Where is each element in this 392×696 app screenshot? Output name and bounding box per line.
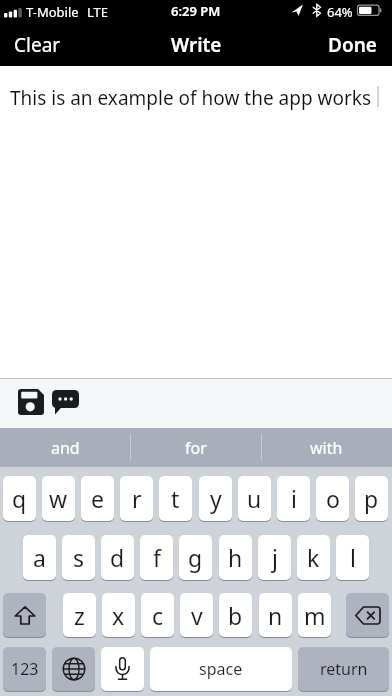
staticText: q <box>12 483 27 514</box>
button[interactable]: return <box>298 647 389 691</box>
staticText: This is an example of how the app works <box>10 85 372 111</box>
button[interactable] <box>101 647 144 691</box>
staticText: u <box>247 483 262 514</box>
button[interactable]: d <box>101 535 134 580</box>
staticText: Done <box>328 32 377 58</box>
staticText: g <box>188 542 203 573</box>
button[interactable]: k <box>297 535 330 580</box>
button[interactable]: z <box>63 593 96 637</box>
staticText: 64% <box>327 3 353 21</box>
button[interactable]: c <box>141 593 174 637</box>
button[interactable]: space <box>150 647 292 691</box>
button[interactable]: l <box>336 535 369 580</box>
staticText: f <box>153 542 161 573</box>
button[interactable] <box>52 390 80 416</box>
button[interactable]: b <box>219 593 252 637</box>
staticText: Clear <box>14 32 61 58</box>
staticText: r <box>132 483 142 514</box>
staticText: s <box>73 542 85 573</box>
button[interactable]: and <box>0 428 131 467</box>
staticText: k <box>307 542 320 573</box>
button[interactable]: r <box>120 476 153 521</box>
button[interactable]: Clear <box>14 32 61 58</box>
button[interactable]: p <box>355 476 388 521</box>
staticText: T-Mobile <box>26 3 79 21</box>
staticText: n <box>268 600 283 631</box>
button[interactable]: f <box>140 535 173 580</box>
button[interactable]: y <box>199 476 232 521</box>
button[interactable]: o <box>316 476 349 521</box>
staticText: LTE <box>87 3 109 21</box>
button[interactable]: s <box>62 535 95 580</box>
staticText: w <box>49 483 68 514</box>
staticText: y <box>210 483 222 514</box>
button[interactable]: e <box>81 476 114 521</box>
staticText: x <box>112 600 125 631</box>
button[interactable]: for <box>131 428 261 467</box>
staticText: 123 <box>11 658 39 680</box>
staticText: for <box>185 437 207 459</box>
button[interactable]: w <box>42 476 75 521</box>
button[interactable] <box>346 593 389 637</box>
button[interactable]: v <box>180 593 213 637</box>
staticText: a <box>33 542 46 573</box>
button[interactable]: x <box>102 593 135 637</box>
staticText: return <box>320 658 368 680</box>
button[interactable]: t <box>159 476 192 521</box>
staticText: j <box>272 542 278 573</box>
staticText: b <box>228 600 243 631</box>
button[interactable] <box>52 647 95 691</box>
button[interactable]: i <box>277 476 310 521</box>
staticText: d <box>110 542 125 573</box>
button[interactable]: u <box>238 476 271 521</box>
button[interactable]: q <box>3 476 36 521</box>
button[interactable]: g <box>179 535 212 580</box>
staticText: e <box>91 483 104 514</box>
staticText: z <box>74 600 85 631</box>
staticText: 6:29 PM <box>171 2 221 20</box>
staticText: l <box>350 542 356 573</box>
staticText: with <box>310 437 343 459</box>
button[interactable]: Done <box>328 32 377 58</box>
button[interactable]: n <box>259 593 292 637</box>
button[interactable]: with <box>261 428 392 467</box>
button[interactable]: m <box>298 593 331 637</box>
button[interactable]: h <box>219 535 252 580</box>
staticText: o <box>326 483 340 514</box>
button[interactable]: 123 <box>3 647 46 691</box>
staticText: p <box>364 483 379 514</box>
button[interactable]: j <box>258 535 291 580</box>
button[interactable] <box>18 389 44 415</box>
staticText: c <box>152 600 164 631</box>
button[interactable]: a <box>23 535 56 580</box>
staticText: Write <box>171 32 222 58</box>
staticText: v <box>191 600 203 631</box>
staticText: m <box>304 600 326 631</box>
staticText: h <box>228 542 243 573</box>
staticText: t <box>171 483 180 514</box>
staticText: i <box>291 483 297 514</box>
button[interactable] <box>3 593 46 637</box>
staticText: and <box>51 437 80 459</box>
staticText: space <box>199 658 243 680</box>
